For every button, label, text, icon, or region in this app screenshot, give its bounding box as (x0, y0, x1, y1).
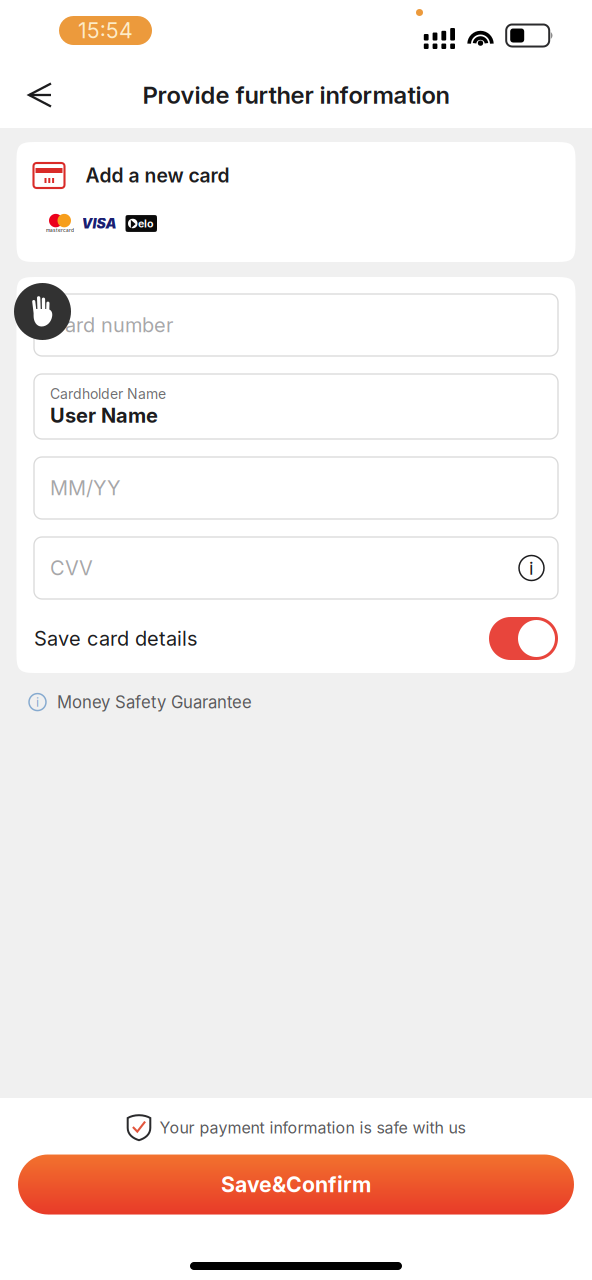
staticText: 15:54 (78, 18, 133, 43)
staticText: i (36, 694, 39, 710)
staticText: elo (138, 217, 154, 230)
staticText: i (529, 557, 534, 579)
staticText: Cardholder Name (50, 385, 166, 402)
staticText: Add a new card (85, 164, 229, 187)
staticText: User Name (50, 403, 158, 428)
button[interactable]: Card number (34, 294, 558, 356)
staticText: CVV (50, 556, 93, 580)
staticText: Save card details (34, 626, 197, 651)
button[interactable]: i (0, 681, 272, 723)
button[interactable]: Back (11, 62, 68, 128)
button[interactable]: Save&Confirm (18, 1154, 574, 1214)
staticText: Save&Confirm (221, 1172, 371, 1197)
staticText: VISA (81, 215, 116, 232)
staticText: MM/YY (50, 476, 121, 500)
staticText: Card number (50, 313, 173, 337)
staticText: Provide further information (142, 80, 449, 109)
button[interactable]: Save card details (489, 617, 558, 660)
button[interactable]: CVV help (505, 537, 558, 599)
button[interactable]: Add a new card (16, 142, 575, 262)
button[interactable]: Cardholder Name (34, 374, 558, 439)
staticText: Money Safety Guarantee (57, 692, 252, 712)
button[interactable]: CVV (34, 537, 505, 599)
staticText: Your payment information is safe with us (159, 1118, 465, 1137)
button[interactable]: MM/YY (34, 457, 558, 519)
staticText: mastercard (46, 227, 74, 233)
